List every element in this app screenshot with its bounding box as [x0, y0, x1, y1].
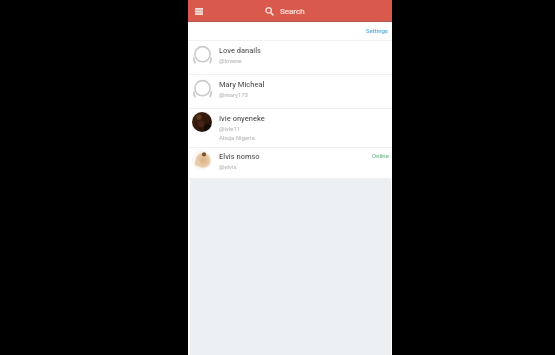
staticText: @ivie11	[219, 125, 241, 132]
staticText: Elvis nomso	[219, 152, 260, 161]
staticText: Settings	[366, 27, 388, 34]
staticText: Abuja Nigeria	[219, 134, 255, 141]
button[interactable]: Online	[369, 150, 392, 161]
staticText: Love danails	[219, 46, 261, 55]
staticText: Mary Micheal	[219, 80, 265, 89]
button[interactable]: Elvis nomso	[188, 148, 392, 178]
staticText: Ivie onyeneke	[219, 114, 265, 123]
staticText: @lovene	[219, 57, 242, 64]
button[interactable]: Settings	[362, 25, 392, 36]
staticText: @mary173	[219, 91, 248, 98]
button[interactable]: Love danails	[188, 41, 392, 74]
staticText: Online	[372, 152, 389, 159]
button[interactable]: Mary Micheal	[188, 75, 392, 108]
staticText: Search	[280, 7, 305, 16]
button[interactable]: Open navigation menu	[191, 2, 207, 21]
staticText: @elvis	[219, 163, 237, 170]
button[interactable]: Search	[261, 2, 309, 21]
button[interactable]: Ivie onyeneke	[188, 109, 392, 147]
